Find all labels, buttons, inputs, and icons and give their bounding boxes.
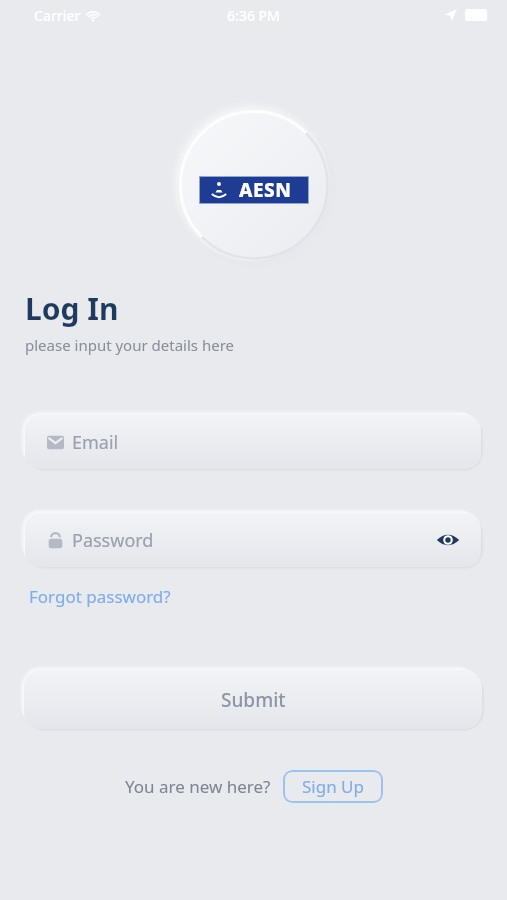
button[interactable]: Email [25, 415, 481, 469]
button[interactable]: Sign Up [283, 770, 383, 803]
button[interactable]: Submit [24, 670, 482, 729]
button[interactable]: Password [25, 513, 481, 567]
button[interactable]: Forgot password? [25, 582, 175, 611]
staticText: Forgot password? [29, 585, 171, 608]
staticText: AESN [239, 177, 292, 203]
staticText: 6:36 PM [227, 6, 280, 25]
staticText: Carrier [34, 6, 81, 25]
staticText: You are new here? [125, 775, 271, 798]
staticText: Log In [25, 288, 119, 329]
staticText: Password [72, 528, 154, 553]
staticText: Sign Up [302, 775, 364, 798]
staticText: Email [72, 430, 119, 455]
staticText: Submit [221, 687, 286, 713]
button[interactable]: Show password [433, 525, 463, 555]
staticText: please input your details here [25, 335, 234, 355]
